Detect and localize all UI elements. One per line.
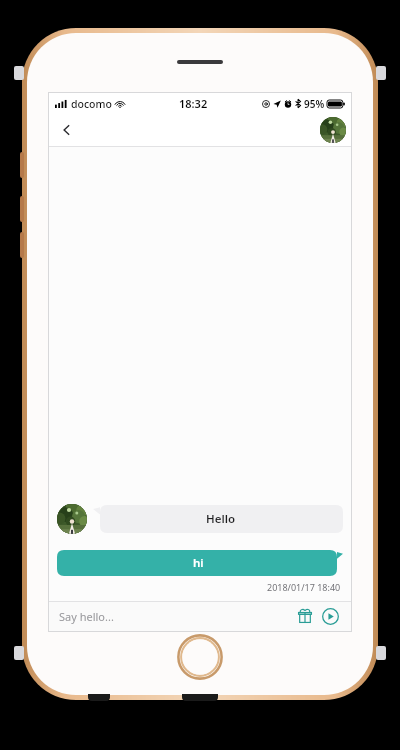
button[interactable]: Hello [93,505,343,533]
staticText: docomo [71,97,112,111]
button[interactable]: Home [177,634,223,680]
button[interactable]: Profile [320,117,346,143]
button[interactable]: Send [319,605,341,627]
button[interactable]: Say hello... [59,609,294,624]
button[interactable]: hi [57,550,343,576]
staticText: 2018/01/17 18:40 [267,581,341,593]
staticText: Hello [206,511,236,527]
button[interactable]: Back [53,116,81,144]
staticText: hi [193,555,204,571]
button[interactable]: Send a gift [294,605,316,627]
staticText: 95% [304,97,325,111]
staticText: Say hello... [59,609,114,624]
staticText: 18:32 [179,96,208,111]
